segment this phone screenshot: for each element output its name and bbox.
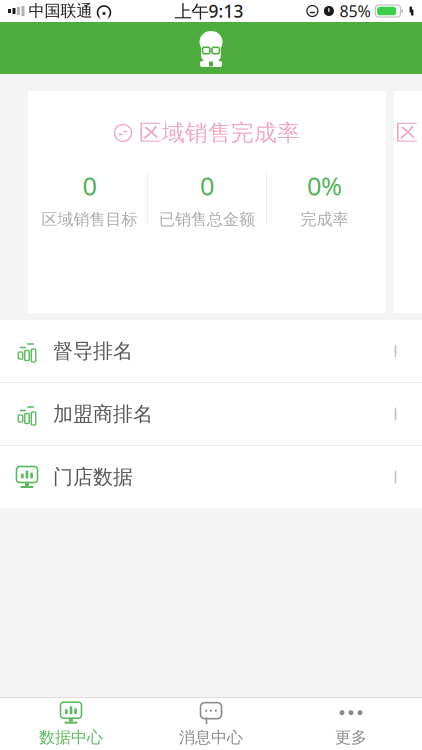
button[interactable]: 更多 xyxy=(281,698,421,750)
staticText: 督导排名 xyxy=(53,339,133,363)
staticText: 中国联通 xyxy=(28,1,92,21)
staticText: 门店数据 xyxy=(53,465,133,489)
staticText: 数据中心 xyxy=(39,728,103,747)
staticText: 区域销售完成率 xyxy=(139,119,300,147)
button[interactable]: 数据中心 xyxy=(1,698,141,750)
staticText: 加盟商排名 xyxy=(53,402,153,426)
button[interactable]: 加盟商排名 xyxy=(0,383,422,445)
staticText: 0% xyxy=(307,169,342,202)
staticText: 上午9:13 xyxy=(174,0,243,22)
staticText: 区域销售目标 xyxy=(41,209,137,229)
button[interactable]: 督导排名 xyxy=(0,320,422,382)
button[interactable]: 消息中心 xyxy=(141,698,281,750)
staticText: 区 xyxy=(395,119,418,147)
staticText: 0 xyxy=(82,169,96,202)
staticText: 完成率 xyxy=(300,209,348,229)
staticText: 85% xyxy=(339,0,370,22)
staticText: 0 xyxy=(200,169,214,202)
button[interactable]: 门店数据 xyxy=(0,446,422,508)
staticText: 更多 xyxy=(335,728,367,747)
staticText: 消息中心 xyxy=(179,728,243,747)
staticText: 已销售总金额 xyxy=(159,209,255,229)
